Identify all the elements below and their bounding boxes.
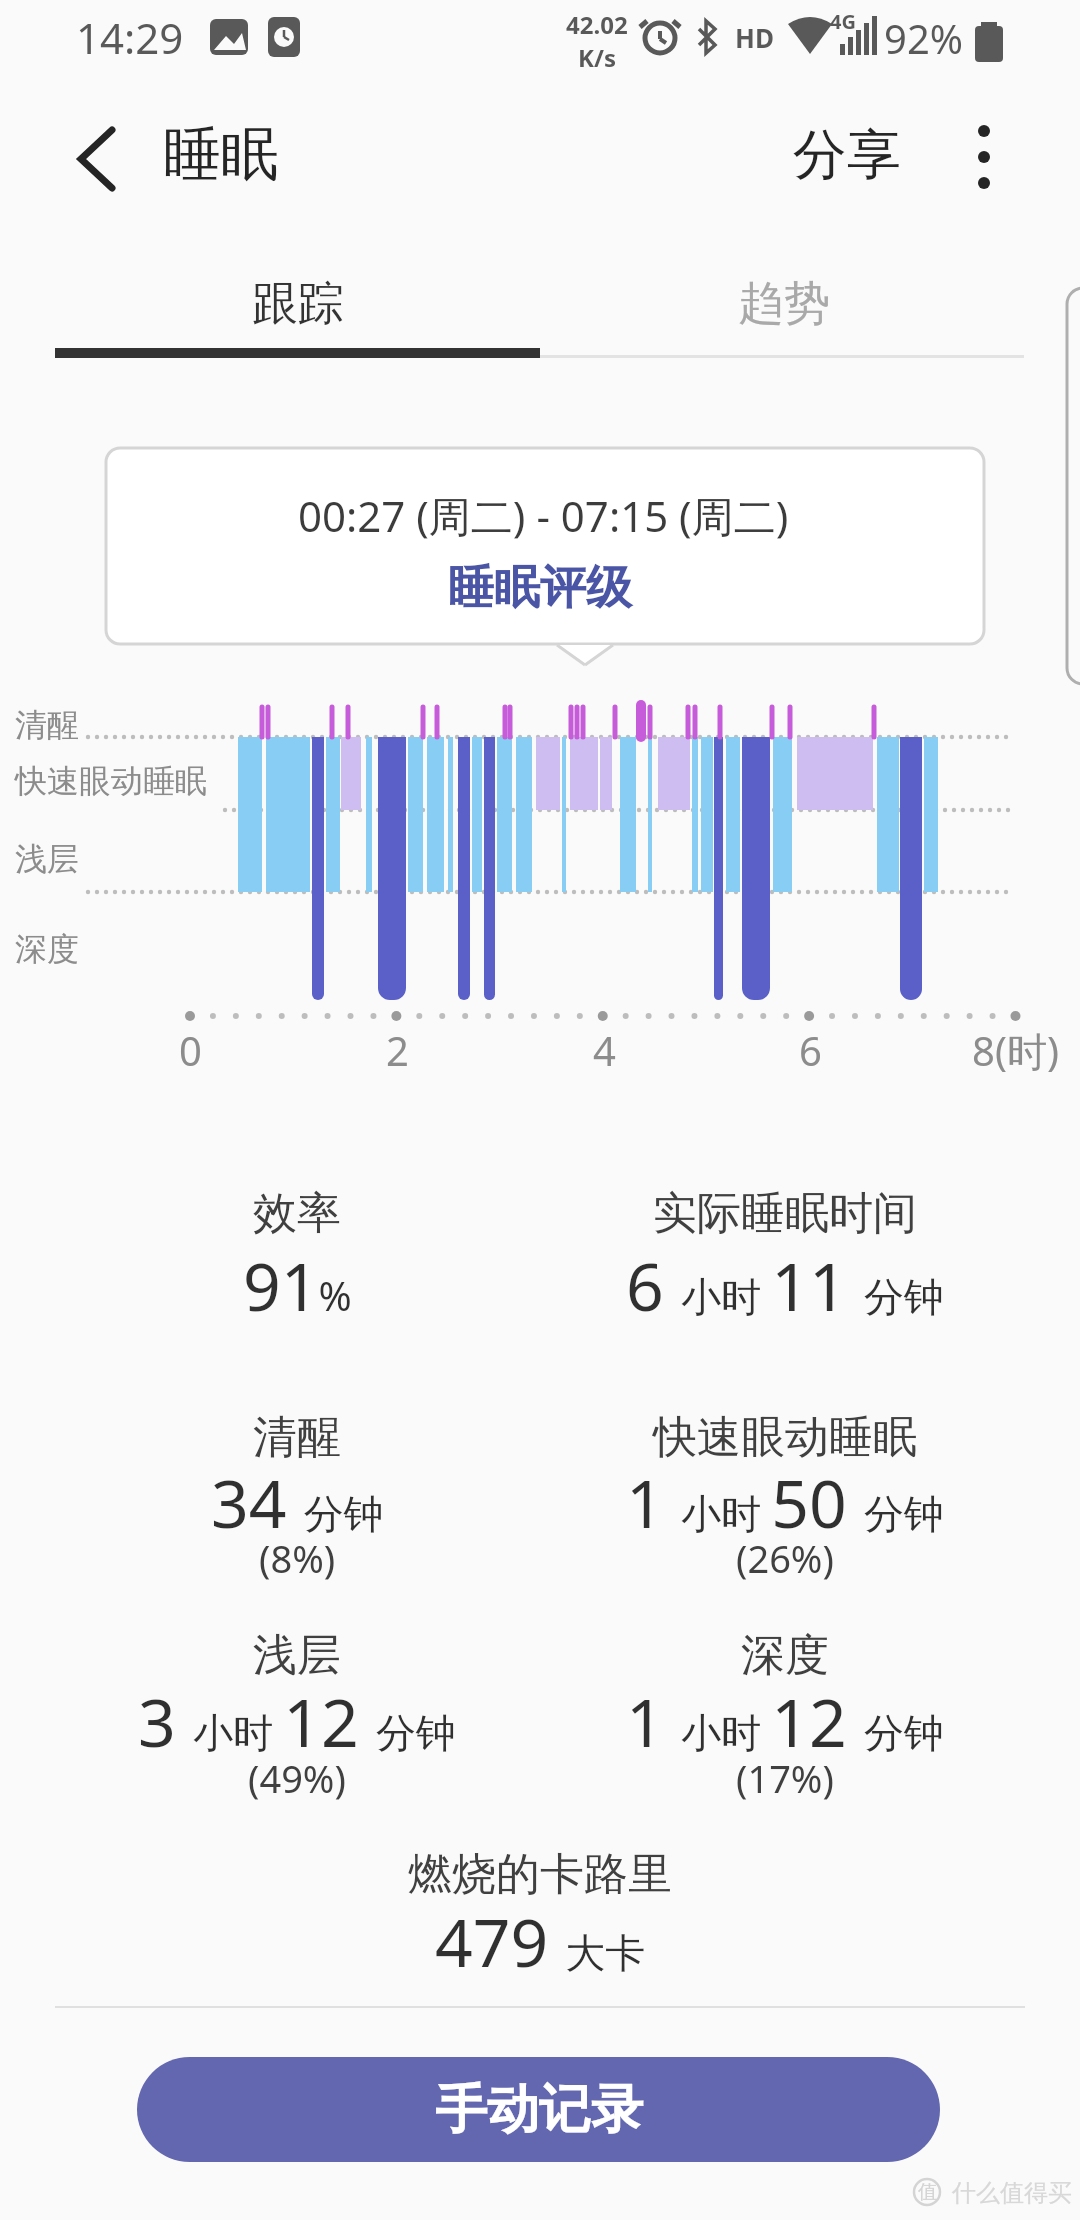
staticText: 燃烧的卡路里 xyxy=(408,1847,672,1902)
button[interactable] xyxy=(945,115,1025,195)
staticText: (8%) xyxy=(259,1532,336,1584)
staticText: 479 大卡 xyxy=(435,1896,646,1986)
staticText: 8(时) xyxy=(972,1023,1059,1078)
staticText: 91% xyxy=(243,1240,352,1330)
staticText: 6 xyxy=(799,1023,822,1077)
staticText: 什么值得买 xyxy=(952,2178,1072,2208)
staticText: 跟踪 xyxy=(252,275,344,333)
staticText: 睡眠评级 xyxy=(448,559,632,617)
button[interactable]: 跟踪 xyxy=(55,260,540,348)
button[interactable]: 趋势 xyxy=(540,260,1027,348)
staticText: 2 xyxy=(386,1023,409,1077)
staticText: 42.02 xyxy=(566,8,628,41)
staticText: 1 小时 50 分钟 xyxy=(626,1457,944,1547)
staticText: 4G xyxy=(830,8,856,35)
staticText: (17%) xyxy=(736,1752,834,1804)
staticText: HD xyxy=(735,20,774,55)
staticText: 4 xyxy=(593,1023,616,1077)
staticText: 34 分钟 xyxy=(211,1457,384,1547)
staticText: 快速眼动睡眠 xyxy=(15,761,207,801)
button[interactable]: 睡眠 xyxy=(163,118,279,191)
staticText: K/s xyxy=(578,41,616,68)
staticText: 深度 xyxy=(15,929,79,969)
staticText: 92% xyxy=(884,11,963,65)
staticText: (26%) xyxy=(736,1532,834,1584)
staticText: 快速眼动睡眠 xyxy=(653,1410,917,1465)
staticText: 14:29 xyxy=(76,9,184,66)
staticText: 0 xyxy=(179,1023,202,1077)
staticText: 3 小时 12 分钟 xyxy=(138,1676,456,1766)
button[interactable]: 手动记录 xyxy=(137,2057,940,2162)
staticText: 趋势 xyxy=(738,275,830,333)
staticText: 浅层 xyxy=(15,839,79,879)
staticText: 手动记录 xyxy=(435,2077,643,2143)
button[interactable]: 睡眠评级 xyxy=(340,548,740,628)
staticText: 清醒 xyxy=(15,705,79,745)
staticText: 睡眠 xyxy=(163,118,279,191)
staticText: 分享 xyxy=(793,121,901,189)
staticText: 深度 xyxy=(741,1628,829,1683)
staticText: 1 小时 12 分钟 xyxy=(626,1676,944,1766)
staticText: 效率 xyxy=(253,1186,341,1241)
staticText: 浅层 xyxy=(253,1628,341,1683)
staticText: 6 小时 11 分钟 xyxy=(626,1240,944,1330)
staticText: 实际睡眠时间 xyxy=(653,1186,917,1241)
button[interactable]: 分享 xyxy=(793,121,901,189)
staticText: 清醒 xyxy=(253,1410,341,1465)
button[interactable] xyxy=(60,120,136,196)
staticText: 00:27 (周二) - 07:15 (周二) xyxy=(298,487,789,544)
staticText: 值 xyxy=(918,2180,937,2204)
staticText: (49%) xyxy=(248,1752,346,1804)
